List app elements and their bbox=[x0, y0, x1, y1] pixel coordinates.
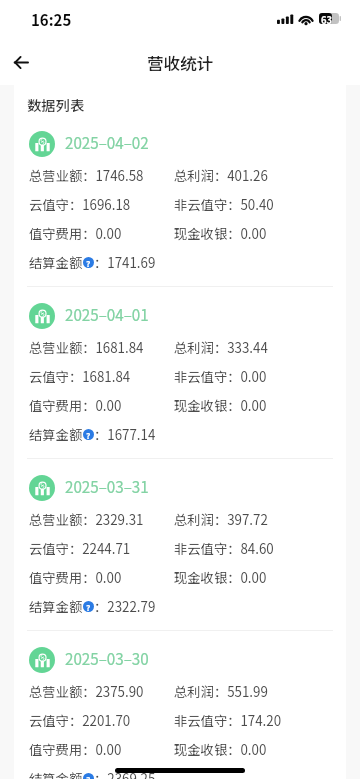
staticText: 总营业额：2375.90 bbox=[29, 682, 144, 701]
staticText: 总利润：333.44 bbox=[174, 338, 268, 357]
staticText: 2025–03–30 bbox=[65, 647, 149, 669]
staticText: 值守费用：0.00 bbox=[29, 568, 122, 587]
button[interactable]: 2025–04–02 bbox=[14, 115, 346, 286]
button[interactable]: 2025–03–31 bbox=[14, 459, 346, 630]
staticText: 营收统计 bbox=[147, 51, 214, 75]
staticText: 非云值守：50.40 bbox=[174, 195, 274, 214]
staticText: ? bbox=[86, 257, 91, 268]
button[interactable]: Back bbox=[3, 44, 39, 80]
staticText: 2025–04–01 bbox=[65, 303, 149, 325]
staticText: 现金收银：0.00 bbox=[174, 740, 267, 759]
staticText: ：2369.25 bbox=[94, 769, 156, 779]
staticText: 结算金额 bbox=[29, 769, 83, 779]
staticText: 结算金额 bbox=[29, 597, 83, 616]
staticText: 结算金额 bbox=[29, 253, 83, 272]
staticText: 非云值守：0.00 bbox=[174, 367, 267, 386]
staticText: 值守费用：0.00 bbox=[29, 396, 122, 415]
staticText: 值守费用：0.00 bbox=[29, 740, 122, 759]
staticText: ? bbox=[86, 601, 91, 612]
button[interactable]: 2025–03–30 bbox=[14, 631, 346, 779]
button[interactable]: 2025–04–01 bbox=[14, 287, 346, 458]
staticText: ? bbox=[86, 773, 91, 779]
staticText: 云值守：2201.70 bbox=[29, 711, 131, 730]
staticText: 云值守：1696.18 bbox=[29, 195, 131, 214]
staticText: ：1741.69 bbox=[94, 253, 156, 272]
staticText: 云值守：2244.71 bbox=[29, 539, 131, 558]
staticText: 非云值守：174.20 bbox=[174, 711, 282, 730]
staticText: 总利润：401.26 bbox=[174, 166, 268, 185]
staticText: ? bbox=[86, 429, 91, 440]
staticText: 云值守：1681.84 bbox=[29, 367, 131, 386]
staticText: 总营业额：1746.58 bbox=[29, 166, 144, 185]
staticText: 现金收银：0.00 bbox=[174, 224, 267, 243]
staticText: ：1677.14 bbox=[94, 425, 156, 444]
staticText: 值守费用：0.00 bbox=[29, 224, 122, 243]
staticText: 现金收银：0.00 bbox=[174, 396, 267, 415]
staticText: 16:25 bbox=[31, 9, 72, 31]
staticText: 63 bbox=[321, 13, 333, 24]
staticText: 总利润：551.99 bbox=[174, 682, 268, 701]
staticText: 总营业额：2329.31 bbox=[29, 510, 144, 529]
staticText: ：2322.79 bbox=[94, 597, 156, 616]
staticText: 结算金额 bbox=[29, 425, 83, 444]
staticText: 2025–04–02 bbox=[65, 131, 149, 153]
staticText: 总利润：397.72 bbox=[174, 510, 268, 529]
staticText: 非云值守：84.60 bbox=[174, 539, 274, 558]
staticText: 总营业额：1681.84 bbox=[29, 338, 144, 357]
staticText: 现金收银：0.00 bbox=[174, 568, 267, 587]
staticText: 2025–03–31 bbox=[65, 475, 149, 497]
staticText: 数据列表 bbox=[27, 94, 85, 115]
